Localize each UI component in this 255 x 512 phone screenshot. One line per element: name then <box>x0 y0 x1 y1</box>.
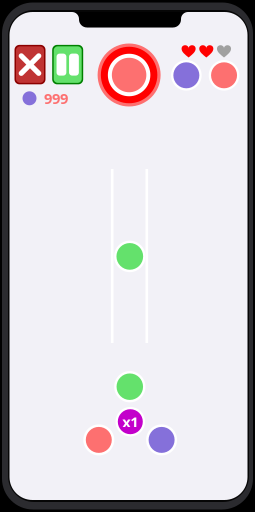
button[interactable]: Stop <box>14 45 45 84</box>
staticText: 999 <box>44 89 68 108</box>
button[interactable]: Shoot <box>98 43 161 106</box>
staticText: x1 <box>122 412 138 431</box>
button[interactable]: Pause <box>52 45 83 84</box>
